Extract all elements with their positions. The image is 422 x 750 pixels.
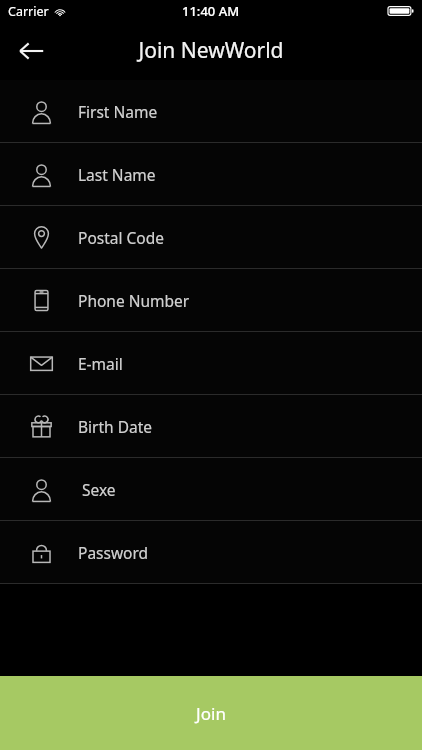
staticText: Password (78, 542, 149, 563)
staticText: Birth Date (78, 416, 153, 437)
staticText: Phone Number (78, 290, 190, 311)
staticText: Last Name (78, 164, 156, 185)
button[interactable]: Last Name (0, 143, 422, 205)
button[interactable]: Sexe (0, 458, 422, 520)
staticText: Join (196, 702, 226, 725)
staticText: Postal Code (78, 227, 164, 248)
staticText: First Name (78, 101, 158, 122)
button[interactable]: Back (10, 30, 52, 72)
button[interactable]: First Name (0, 80, 422, 142)
staticText: Sexe (82, 479, 116, 500)
staticText: Carrier (8, 3, 49, 20)
button[interactable]: Password (0, 521, 422, 583)
staticText: E-mail (78, 353, 123, 374)
staticText: 11:40 AM (182, 2, 240, 20)
button[interactable]: Postal Code (0, 206, 422, 268)
button[interactable]: Birth Date (0, 395, 422, 457)
button[interactable]: Phone Number (0, 269, 422, 331)
button[interactable]: E-mail (0, 332, 422, 394)
staticText: Join NewWorld (138, 36, 284, 65)
button[interactable]: Join (0, 676, 422, 750)
